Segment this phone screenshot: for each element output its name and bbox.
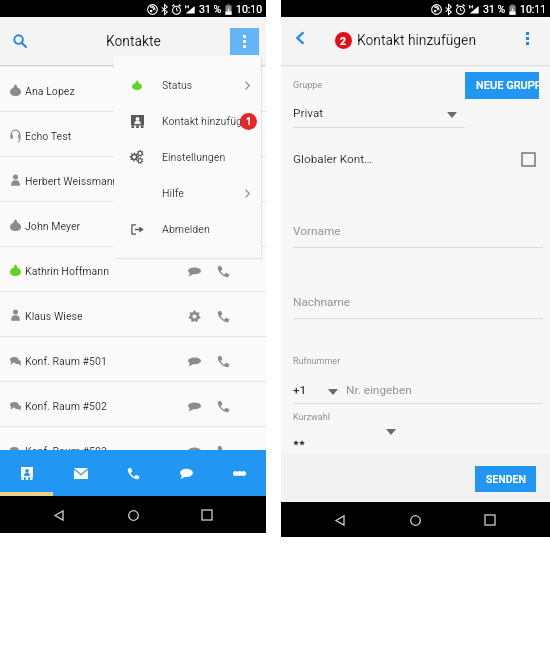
button[interactable]: Suche xyxy=(5,26,35,56)
button[interactable]: Globaler Kontakt xyxy=(522,153,535,166)
button[interactable]: Kontakt hinzufüg… xyxy=(114,103,261,139)
staticText: SENDEN xyxy=(486,473,526,485)
staticText: Status xyxy=(162,79,193,91)
button[interactable]: Startseite xyxy=(400,505,430,535)
button[interactable]: Mehr Optionen xyxy=(230,28,259,55)
button[interactable]: Zurück xyxy=(325,505,355,535)
button[interactable]: SENDEN xyxy=(475,466,536,492)
button[interactable]: John Meyer xyxy=(0,202,266,246)
button[interactable]: Anrufe xyxy=(107,450,160,496)
button[interactable]: Einstellungen xyxy=(114,139,261,175)
staticText: Einstellungen xyxy=(162,151,226,163)
staticText: Kurzwahl xyxy=(293,412,330,423)
staticText: +1 xyxy=(293,383,307,397)
button[interactable]: Anrufen xyxy=(209,387,238,425)
button[interactable]: Mehr xyxy=(213,450,266,496)
staticText: 2 xyxy=(340,35,347,47)
staticText: 31 % xyxy=(199,3,222,15)
button[interactable]: Chat xyxy=(160,450,213,496)
button[interactable]: Nachricht senden xyxy=(179,342,209,380)
staticText: Globaler Kont… xyxy=(293,152,372,166)
button[interactable]: Ana Lopez xyxy=(0,67,266,111)
staticText: Gruppe xyxy=(293,80,323,91)
button[interactable]: Zurück xyxy=(286,24,314,52)
staticText: 10:10 xyxy=(236,3,263,15)
staticText: Konf. Raum #503 xyxy=(25,445,107,457)
staticText: NEUE GRUPPE xyxy=(476,79,539,92)
staticText: Herbert Weissmann xyxy=(25,175,119,187)
staticText: Kontakt hinzufüg… xyxy=(162,115,250,127)
button[interactable]: Übersicht xyxy=(475,505,505,535)
staticText: Nachname xyxy=(293,295,351,309)
button[interactable]: Anrufen xyxy=(209,432,238,470)
button[interactable]: Nachricht senden xyxy=(179,252,209,290)
staticText: Ana Lopez xyxy=(25,85,75,97)
staticText: Kontakte xyxy=(106,33,161,49)
button[interactable]: Anrufen xyxy=(209,252,238,290)
staticText: 10:11 xyxy=(520,3,547,15)
button[interactable]: Startseite xyxy=(118,500,148,530)
button[interactable]: Konf. Raum #502 xyxy=(0,382,266,426)
staticText: John Meyer xyxy=(25,220,81,232)
button[interactable]: Konf. Raum #501 xyxy=(0,337,266,381)
button[interactable]: Übersicht xyxy=(192,500,222,530)
button[interactable]: Konf. Raum #503 xyxy=(0,427,266,471)
staticText: Kathrin Hoffmann xyxy=(25,265,110,277)
button[interactable]: Einstellungen xyxy=(179,297,209,335)
button[interactable]: Nachricht senden xyxy=(179,432,209,470)
staticText: Kontakt hinzufügen xyxy=(357,32,477,48)
staticText: Echo Test xyxy=(25,130,72,142)
button[interactable]: Kathrin Hoffmann xyxy=(0,247,266,291)
button[interactable]: Hilfe xyxy=(114,175,261,211)
button[interactable]: Status xyxy=(114,67,261,103)
button[interactable]: Nachricht senden xyxy=(179,387,209,425)
button[interactable]: Echo Test xyxy=(0,112,266,156)
button[interactable]: Anrufen xyxy=(209,297,238,335)
button[interactable]: Anrufen xyxy=(209,342,238,380)
staticText: Rufnummer xyxy=(293,356,341,367)
staticText: 31 % xyxy=(483,3,506,15)
staticText: Konf. Raum #502 xyxy=(25,400,107,412)
button[interactable]: Zurück xyxy=(44,500,74,530)
staticText: Privat xyxy=(293,106,324,120)
button[interactable]: NEUE GRUPPE xyxy=(465,72,539,99)
staticText: Nr. eingeben xyxy=(346,383,412,397)
staticText: Konf. Raum #501 xyxy=(25,355,107,367)
button[interactable]: Nachrichten xyxy=(54,450,107,496)
button[interactable]: Mehr Optionen xyxy=(515,26,540,51)
staticText: Vorname xyxy=(293,224,341,238)
button[interactable]: Klaus Wiese xyxy=(0,292,266,336)
button[interactable]: Herbert Weissmann xyxy=(0,157,266,201)
button[interactable]: Kontakte xyxy=(0,450,54,496)
staticText: Hilfe xyxy=(162,187,184,199)
button[interactable]: Abmelden xyxy=(114,211,261,247)
staticText: 1 xyxy=(246,116,252,128)
staticText: Klaus Wiese xyxy=(25,310,83,322)
staticText: Abmelden xyxy=(162,223,210,235)
